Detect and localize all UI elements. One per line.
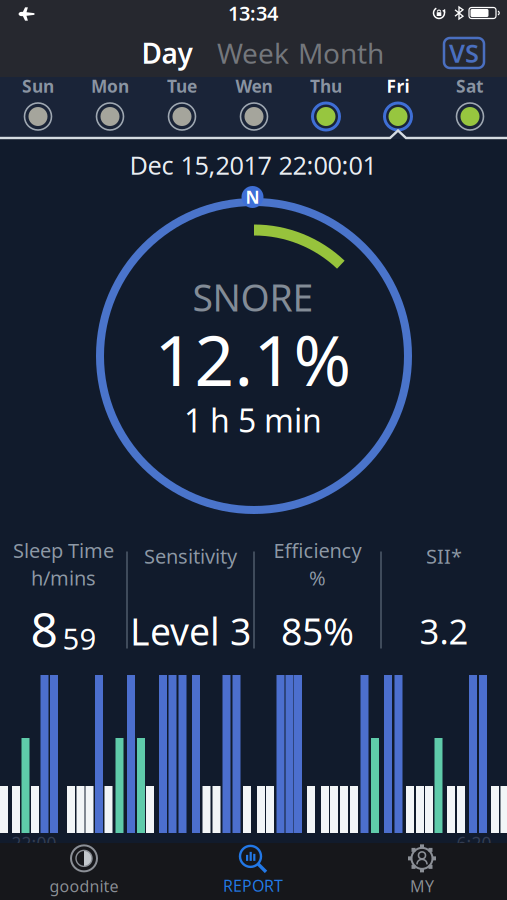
staticText: h/mins xyxy=(31,564,96,591)
staticText: 8 xyxy=(30,597,57,661)
staticText: Fri xyxy=(386,74,409,97)
staticText: Level 3 xyxy=(130,606,251,656)
button[interactable]: Thu xyxy=(294,75,358,131)
staticText: 13:34 xyxy=(228,0,278,26)
button[interactable]: VS xyxy=(442,36,486,70)
button[interactable]: Month xyxy=(286,31,396,75)
staticText: Sensitivity xyxy=(144,543,237,569)
button[interactable]: Sun xyxy=(6,75,70,131)
staticText: 12.1% xyxy=(154,313,351,405)
button[interactable]: Wen xyxy=(222,75,286,131)
staticText: MY xyxy=(410,875,434,897)
button[interactable]: MY xyxy=(362,844,482,898)
staticText: Dec 15,2017 22:00:01 xyxy=(129,148,376,182)
staticText: Tue xyxy=(167,74,197,97)
staticText: SII* xyxy=(426,543,462,569)
staticText: Wen xyxy=(235,74,272,97)
staticText: goodnite xyxy=(49,875,118,897)
staticText: Mon xyxy=(91,74,129,97)
staticText: Thu xyxy=(310,74,342,97)
button[interactable]: Day xyxy=(132,31,202,75)
button[interactable]: Week xyxy=(215,31,291,75)
staticText: 22:00 xyxy=(11,831,56,854)
staticText: Sleep Time xyxy=(13,537,114,563)
button[interactable]: Mon xyxy=(78,75,142,131)
staticText: VS xyxy=(449,36,479,70)
staticText: 1 h 5 min xyxy=(184,399,322,441)
button[interactable]: goodnite xyxy=(24,844,144,898)
staticText: 6:20 xyxy=(456,831,491,854)
staticText: 3.2 xyxy=(419,608,468,654)
button[interactable]: Sat xyxy=(438,75,502,131)
staticText: 85% xyxy=(281,606,354,656)
staticText: Day xyxy=(141,34,192,72)
staticText: REPORT xyxy=(223,875,283,896)
staticText: 59 xyxy=(62,619,96,658)
staticText: N xyxy=(245,185,259,208)
staticText: Week xyxy=(217,34,289,72)
staticText: SNORE xyxy=(192,272,313,322)
staticText: Sat xyxy=(456,74,484,97)
button[interactable]: REPORT xyxy=(193,844,313,898)
staticText: Sun xyxy=(22,74,54,97)
staticText: % xyxy=(309,564,326,591)
staticText: Month xyxy=(298,34,384,72)
staticText: Efficiency xyxy=(273,537,361,563)
button[interactable]: Tue xyxy=(150,75,214,131)
button[interactable]: Fri xyxy=(366,75,430,131)
